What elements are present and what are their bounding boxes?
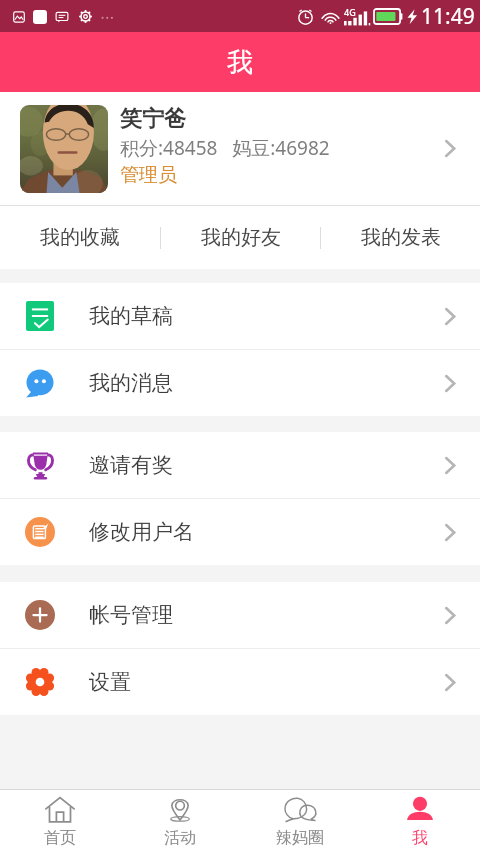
button[interactable]: 活动	[120, 790, 240, 853]
staticText: 我的收藏	[40, 225, 120, 250]
button[interactable]: 笑宁爸	[0, 92, 480, 205]
button[interactable]: 邀请有奖	[0, 432, 480, 498]
button[interactable]: 辣妈圈	[240, 790, 360, 853]
staticText: 积分:48458 妈豆:46982	[120, 135, 330, 161]
button[interactable]: 我的收藏	[0, 206, 160, 269]
button[interactable]: 我的好友	[161, 206, 320, 269]
staticText: 设置	[89, 669, 131, 695]
staticText: 管理员	[120, 163, 177, 187]
button[interactable]: 首页	[0, 790, 120, 853]
button[interactable]: 设置	[0, 649, 480, 715]
button[interactable]: 我的消息	[0, 350, 480, 416]
staticText: 帐号管理	[89, 602, 173, 628]
staticText: 我	[227, 46, 253, 79]
staticText: 邀请有奖	[89, 452, 173, 478]
button[interactable]: 帐号管理	[0, 582, 480, 648]
staticText: 修改用户名	[89, 519, 194, 545]
staticText: 我的草稿	[89, 303, 173, 329]
staticText: 笑宁爸	[120, 105, 186, 133]
staticText: 辣妈圈	[276, 828, 324, 848]
staticText: 活动	[164, 828, 196, 848]
staticText: 我的发表	[361, 225, 441, 250]
staticText: 我的好友	[201, 225, 281, 250]
button[interactable]: 我	[360, 790, 480, 853]
button[interactable]: 我的草稿	[0, 283, 480, 349]
button[interactable]: 我的发表	[321, 206, 480, 269]
staticText: 我	[412, 828, 428, 848]
staticText: 4G	[344, 6, 356, 18]
button[interactable]: 修改用户名	[0, 499, 480, 565]
staticText: 我的消息	[89, 370, 173, 396]
staticText: 首页	[44, 828, 76, 848]
staticText: 11:49	[421, 2, 475, 31]
